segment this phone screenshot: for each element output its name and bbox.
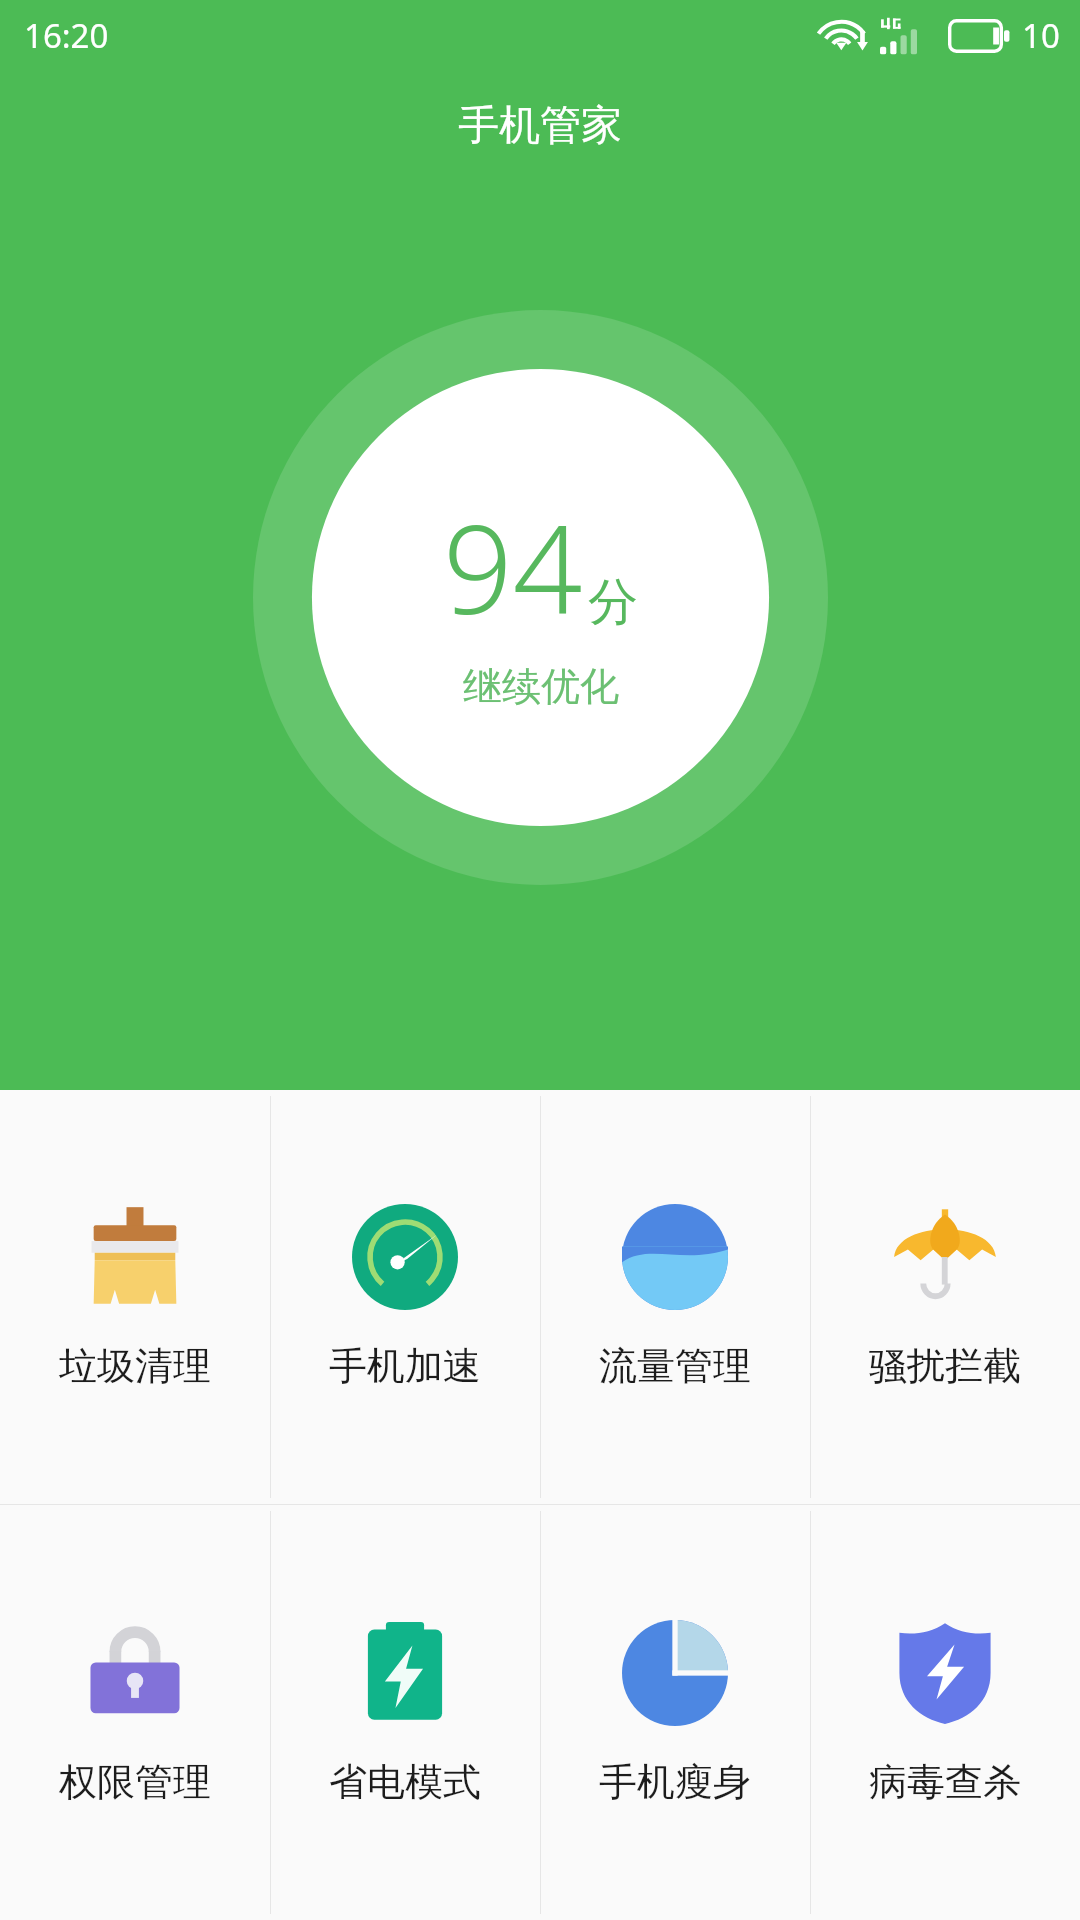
staticText: 10 [1022, 13, 1060, 58]
button[interactable]: 手机加速 [270, 1090, 540, 1504]
other: Battery [948, 19, 1012, 53]
staticText: 94 [443, 484, 583, 650]
staticText: 16:20 [24, 13, 109, 58]
staticText: 流量管理 [599, 1342, 751, 1390]
staticText: 手机管家 [458, 100, 622, 152]
staticText: 权限管理 [59, 1758, 211, 1806]
button[interactable]: 垃圾清理 [0, 1090, 270, 1504]
staticText: 病毒查杀 [869, 1758, 1021, 1806]
button[interactable]: 流量管理 [540, 1090, 810, 1504]
staticText: 省电模式 [329, 1758, 481, 1806]
staticText: 手机瘦身 [599, 1758, 751, 1806]
staticText: 手机加速 [329, 1342, 481, 1390]
button[interactable]: 省电模式 [270, 1505, 540, 1920]
staticText: 分 [588, 571, 638, 634]
button[interactable]: 骚扰拦截 [810, 1090, 1080, 1504]
button[interactable]: 权限管理 [0, 1505, 270, 1920]
staticText: 垃圾清理 [59, 1342, 211, 1390]
button[interactable]: 手机瘦身 [540, 1505, 810, 1920]
other: 4G signal [880, 17, 934, 55]
other: Wi‑Fi [822, 19, 868, 53]
staticText: 继续优化 [463, 662, 619, 711]
staticText: 骚扰拦截 [869, 1342, 1021, 1390]
button[interactable]: 病毒查杀 [810, 1505, 1080, 1920]
